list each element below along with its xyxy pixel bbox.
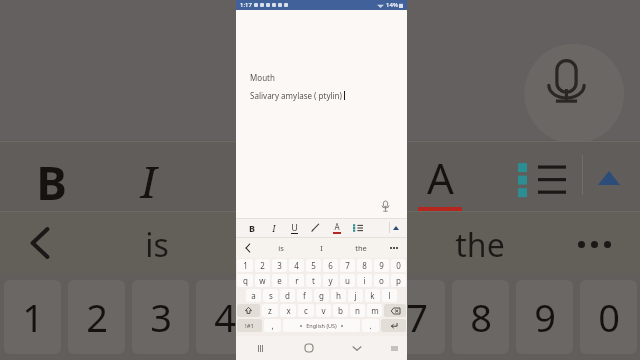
button[interactable]: k [365,289,380,302]
staticText: 14% [386,1,398,9]
button[interactable]: Bulleted list [347,218,368,237]
staticText: !#1 [245,322,254,330]
button[interactable]: More options [381,237,407,258]
staticText: c [304,305,308,316]
button[interactable]: 1 [237,259,253,272]
button[interactable]: 7 [340,259,355,272]
staticText: . [369,320,372,331]
button[interactable]: v [316,304,331,317]
staticText: h [336,290,341,301]
button[interactable]: h [331,289,346,302]
button[interactable]: p [391,274,406,287]
button[interactable]: q [237,274,253,287]
staticText: is [278,243,284,253]
staticText: f [303,290,306,301]
staticText: 3 [277,260,282,271]
staticText: 4 [294,260,299,271]
staticText: 7 [345,260,350,271]
button[interactable]: Bold [241,218,263,237]
button[interactable]: Voice input [377,198,393,214]
staticText: u [345,275,350,286]
button[interactable]: l [382,289,397,302]
button[interactable]: 5 [306,259,321,272]
staticText: y [328,275,333,286]
button[interactable]: o [374,274,389,287]
button[interactable]: r [289,274,304,287]
button[interactable]: Keyboard layout [381,336,407,360]
button[interactable]: Hide keyboard [333,336,381,360]
staticText: b [338,305,343,316]
button[interactable]: . [362,319,379,332]
staticText: 1 [22,291,44,343]
staticText: 6 [342,291,364,343]
staticText: U [291,221,298,233]
button[interactable]: 3 [272,259,287,272]
button[interactable]: u [340,274,355,287]
button[interactable]: c [298,304,314,317]
button[interactable]: s [263,289,278,302]
button[interactable]: w [255,274,270,287]
staticText: v [321,305,326,316]
staticText: 1:17 [240,1,252,9]
staticText: 8 [470,291,492,343]
button[interactable]: e [272,274,287,287]
staticText: 4 [214,291,236,343]
button[interactable]: 9 [374,259,389,272]
button[interactable]: Recents [236,336,285,360]
staticText: A [427,149,454,206]
staticText: m [371,305,379,316]
button[interactable]: I [301,237,341,258]
button[interactable]: d [280,289,295,302]
button[interactable]: 4 [289,259,304,272]
button[interactable]: English (US) [283,319,360,332]
staticText: 2 [86,291,108,343]
button[interactable]: n [350,304,365,317]
staticText: Salivary amylase ( ptylin) [250,90,342,101]
staticText: 2 [260,260,265,271]
button[interactable]: Home [285,336,333,360]
button[interactable]: 2 [255,259,270,272]
button[interactable]: Highlight [305,218,326,237]
staticText: 0 [396,260,401,271]
staticText: s [269,290,273,301]
button[interactable]: Italic [263,218,284,237]
button[interactable]: is [260,237,301,258]
button[interactable]: Text colour [326,218,347,237]
button[interactable]: m [367,304,382,317]
button[interactable]: x [280,304,296,317]
button[interactable]: t [306,274,321,287]
staticText: 6 [328,260,333,271]
button[interactable]: 8 [357,259,372,272]
staticText: 7 [406,291,428,343]
button[interactable]: y [323,274,338,287]
staticText: 8 [362,260,367,271]
staticText: 5 [311,260,316,271]
button[interactable]: i [357,274,372,287]
staticText: d [285,290,290,301]
button[interactable]: 6 [323,259,338,272]
button[interactable]: More formatting [390,218,402,237]
staticText: j [354,290,357,301]
staticText: i [363,275,366,286]
staticText: p [396,275,401,286]
button[interactable]: Symbols [237,319,262,332]
button[interactable]: f [297,289,312,302]
button[interactable]: b [333,304,348,317]
button[interactable]: g [314,289,329,302]
staticText: 9 [379,260,384,271]
staticText: t [312,275,315,286]
button[interactable]: Underline [284,218,305,237]
button[interactable]: Shift [237,304,260,317]
button[interactable]: Previous suggestions [236,237,260,258]
staticText: 5 [278,291,300,343]
button[interactable]: j [348,289,363,302]
button[interactable]: a [246,289,261,302]
button[interactable]: z [262,304,278,317]
button[interactable]: Backspace [384,304,406,317]
staticText: n [355,305,360,316]
button[interactable]: the [341,237,381,258]
button[interactable]: 0 [391,259,406,272]
staticText: r [295,275,299,286]
button[interactable]: Enter [381,319,406,332]
button[interactable]: , [264,319,281,332]
